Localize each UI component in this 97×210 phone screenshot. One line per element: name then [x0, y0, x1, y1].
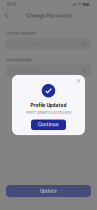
button[interactable]: Close — [75, 78, 81, 84]
button[interactable]: Update — [6, 185, 91, 197]
staticText: Change Password — [26, 12, 71, 19]
staticText: Continue — [38, 122, 59, 127]
staticText: 9:41 — [7, 2, 16, 7]
button[interactable]: Continue — [31, 119, 66, 130]
staticText: Update — [40, 188, 57, 194]
staticText: New Password — [6, 58, 31, 62]
staticText: Current Password — [6, 31, 36, 36]
staticText: Profile Updated — [30, 102, 66, 108]
button[interactable]: Back — [2, 9, 11, 21]
staticText: Profile updated successfully — [25, 110, 71, 114]
